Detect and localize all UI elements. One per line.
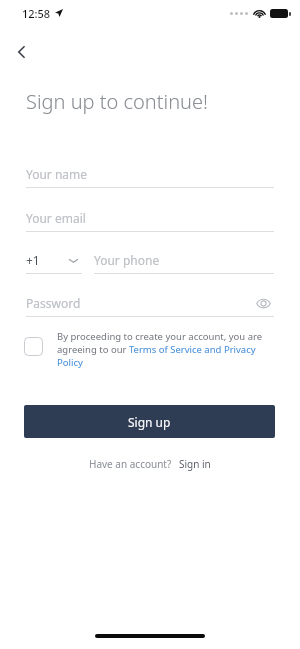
other: Accept terms checkbox (24, 337, 43, 356)
staticText: Sign up to continue! (26, 88, 208, 115)
staticText: By proceeding to create your account, yo… (57, 330, 276, 369)
button[interactable]: Sign up (24, 405, 275, 438)
staticText: +1 (26, 252, 40, 268)
button[interactable]: Password (26, 289, 274, 317)
button[interactable]: Your name (26, 160, 274, 188)
button[interactable]: Accept terms checkbox (24, 330, 276, 369)
button[interactable]: Your phone (94, 246, 274, 274)
staticText: Password (26, 295, 81, 311)
button[interactable]: Show password (252, 292, 274, 314)
button[interactable]: Sign in (179, 457, 211, 471)
staticText: 12:58 (22, 6, 51, 21)
staticText: Your email (26, 210, 86, 226)
other: Select country code (69, 256, 78, 265)
staticText: Your name (26, 166, 88, 182)
button[interactable]: Your email (26, 204, 274, 232)
staticText: Sign up (128, 414, 171, 430)
button[interactable]: Back (6, 36, 38, 68)
button[interactable]: +1 (26, 246, 82, 274)
staticText: Have an account? (89, 457, 172, 471)
staticText: Sign in (179, 457, 211, 471)
staticText: Your phone (94, 252, 160, 268)
